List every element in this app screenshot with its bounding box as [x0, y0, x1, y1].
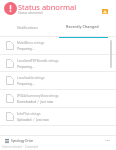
button[interactable]: LocalizedPDFBundle.strings [0, 54, 116, 72]
button[interactable]: InfoPlist.strings [0, 107, 116, 125]
staticText: Status abnormal [18, 2, 77, 12]
staticText: Recently Changed [66, 24, 99, 29]
staticText: Uploaded / Just now [17, 118, 49, 122]
staticText: Notifications [17, 25, 38, 30]
button[interactable]: Notifications [0, 21, 55, 34]
button[interactable]: Localizable.strings [0, 71, 116, 89]
staticText: IPXLibSummaryView.strings [17, 94, 59, 98]
button[interactable]: MainMenu.strings [0, 36, 116, 54]
staticText: 0 items selected · Connected [2, 145, 39, 149]
staticText: Preparing... [17, 47, 35, 51]
staticText: MainMenu.strings [17, 41, 45, 45]
staticText: LocalizedPDFBundle.strings [17, 59, 59, 63]
staticText: Localizable.strings [17, 76, 45, 80]
button[interactable]: IPXLibSummaryView.strings [0, 89, 116, 107]
staticText: Downloaded / Just now [17, 100, 54, 104]
staticText: Preparing... [17, 65, 35, 69]
staticText: Status abnormal [18, 11, 43, 15]
button[interactable]: Recently Changed [57, 21, 108, 34]
button[interactable]: More options [103, 136, 112, 145]
staticText: Preparing... [17, 82, 35, 86]
staticText: Synology Drive [11, 139, 34, 143]
staticText: InfoPlist.strings [17, 112, 41, 116]
button[interactable]: Warning [99, 6, 110, 16]
